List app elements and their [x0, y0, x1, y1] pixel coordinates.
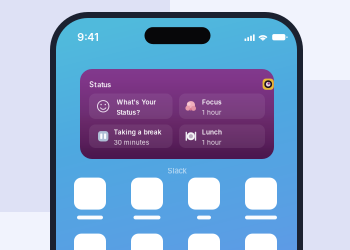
button[interactable]: App — [68, 178, 112, 219]
button[interactable]: App — [182, 234, 226, 250]
staticText: What's Your — [116, 98, 156, 106]
staticText: Status — [89, 80, 111, 89]
button[interactable]: Taking a break — [89, 124, 172, 148]
button[interactable]: Lunch — [179, 124, 265, 148]
staticText: 30 minutes — [114, 138, 149, 146]
button[interactable]: What's Your — [89, 93, 172, 119]
staticText: 1 hour — [202, 138, 221, 146]
staticText: Slack — [167, 166, 186, 175]
staticText: 9:41 — [77, 30, 99, 43]
staticText: Taking a break — [114, 128, 162, 136]
button[interactable]: App — [239, 234, 283, 250]
button[interactable]: App — [182, 178, 226, 219]
button[interactable]: App — [125, 178, 169, 219]
button[interactable]: Focus — [179, 93, 265, 119]
button[interactable]: App — [239, 178, 283, 219]
button[interactable]: App — [125, 234, 169, 250]
button[interactable]: Slack — [263, 79, 274, 90]
staticText: Focus — [202, 98, 222, 106]
staticText: Lunch — [202, 128, 222, 136]
staticText: Status? — [116, 108, 140, 116]
staticText: 1 hour — [202, 108, 221, 116]
button[interactable]: App — [68, 234, 112, 250]
